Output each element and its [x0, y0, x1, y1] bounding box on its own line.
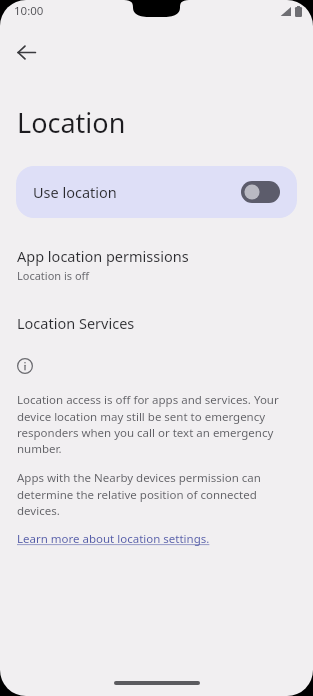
button[interactable]: Back	[6, 32, 46, 72]
staticText: Location is off	[17, 268, 90, 283]
button[interactable]: Use location	[16, 166, 297, 218]
staticText: 10:00	[14, 3, 44, 19]
staticText: Location	[17, 104, 126, 141]
staticText: Use location	[33, 182, 117, 202]
button[interactable]: Learn more about location settings.	[17, 531, 210, 547]
staticText: Apps with the Nearby devices permission …	[17, 470, 296, 518]
button[interactable]: Location Services	[0, 311, 313, 335]
staticText: App location permissions	[17, 246, 189, 266]
staticText: Location access is off for apps and serv…	[17, 392, 296, 456]
button[interactable]: App location permissions	[0, 244, 313, 285]
staticText: Learn more about location settings.	[17, 531, 210, 547]
staticText: Location Services	[17, 313, 135, 333]
